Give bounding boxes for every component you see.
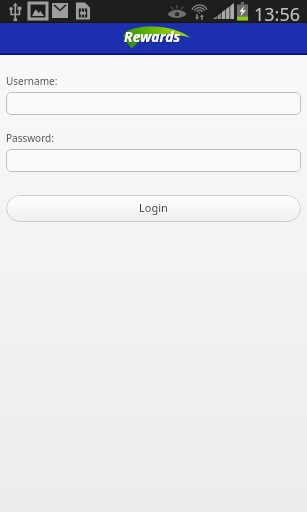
button[interactable]	[6, 92, 301, 115]
staticText: Username:	[6, 74, 58, 88]
staticText: 13:56	[254, 2, 301, 25]
staticText: Rewards	[124, 27, 181, 46]
button[interactable]: Rewards	[118, 23, 194, 55]
staticText: Login	[139, 200, 168, 215]
button[interactable]	[6, 149, 301, 172]
button[interactable]: Login	[6, 195, 301, 222]
staticText: Rewards	[125, 28, 182, 47]
staticText: Password:	[6, 131, 54, 145]
